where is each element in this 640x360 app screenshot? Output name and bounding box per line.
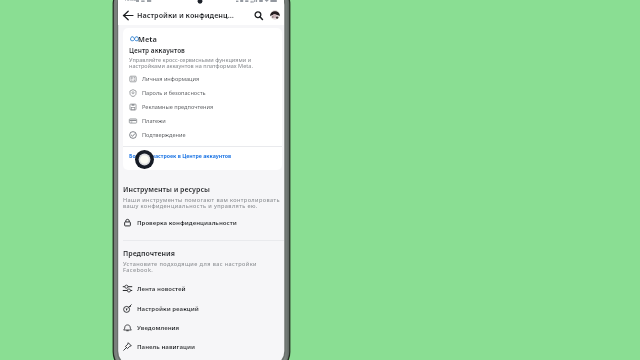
staticText: Уведомления <box>137 324 180 332</box>
staticText: Meta <box>138 34 157 44</box>
staticText: Подтверждение <box>142 131 186 139</box>
staticText: 10:32 <box>124 0 137 1</box>
staticText: Управляйте кросс-сервисными функциями и … <box>129 56 254 70</box>
button[interactable]: Назад <box>121 9 134 22</box>
button[interactable]: Пароль и безопасность <box>129 86 282 100</box>
staticText: Пароль и безопасность <box>142 89 206 97</box>
button[interactable]: Поиск <box>252 9 265 22</box>
staticText: Личная информация <box>142 75 200 83</box>
button[interactable]: Профиль <box>270 10 280 20</box>
staticText: Лента новостей <box>137 285 186 293</box>
staticText: Рекламные предпочтения <box>142 103 214 111</box>
button[interactable]: Подтверждение <box>129 128 282 142</box>
staticText: Установите подходящие для вас настройки … <box>123 260 257 274</box>
staticText: Больше настроек в Центре аккаунтов <box>129 152 232 159</box>
button[interactable]: Проверка конфиденциальности <box>123 213 284 232</box>
staticText: Наши инструменты помогают вам контролиро… <box>123 196 280 210</box>
button[interactable]: Настройки реакций <box>123 299 284 318</box>
button[interactable]: Панель навигации <box>123 337 284 356</box>
button[interactable]: Meta <box>123 28 282 170</box>
staticText: Инструменты и ресурсы <box>123 185 210 194</box>
button[interactable]: Личная информация <box>129 72 282 86</box>
staticText: Платежи <box>142 117 166 125</box>
staticText: Проверка конфиденциальности <box>137 219 237 227</box>
staticText: Настройки реакций <box>137 305 199 313</box>
staticText: Центр аккаунтов <box>129 46 185 55</box>
staticText: Настройки и конфиденц… <box>137 10 234 20</box>
button[interactable]: Уведомления <box>123 318 284 337</box>
button[interactable]: Настройки и конфиденц… <box>137 10 247 20</box>
button[interactable]: Платежи <box>129 114 282 128</box>
staticText: Панель навигации <box>137 343 195 351</box>
button[interactable]: Рекламные предпочтения <box>129 100 282 114</box>
button[interactable]: Больше настроек в Центре аккаунтов <box>123 147 282 170</box>
staticText: Предпочтения <box>123 249 175 258</box>
button[interactable]: Лента новостей <box>123 279 284 298</box>
